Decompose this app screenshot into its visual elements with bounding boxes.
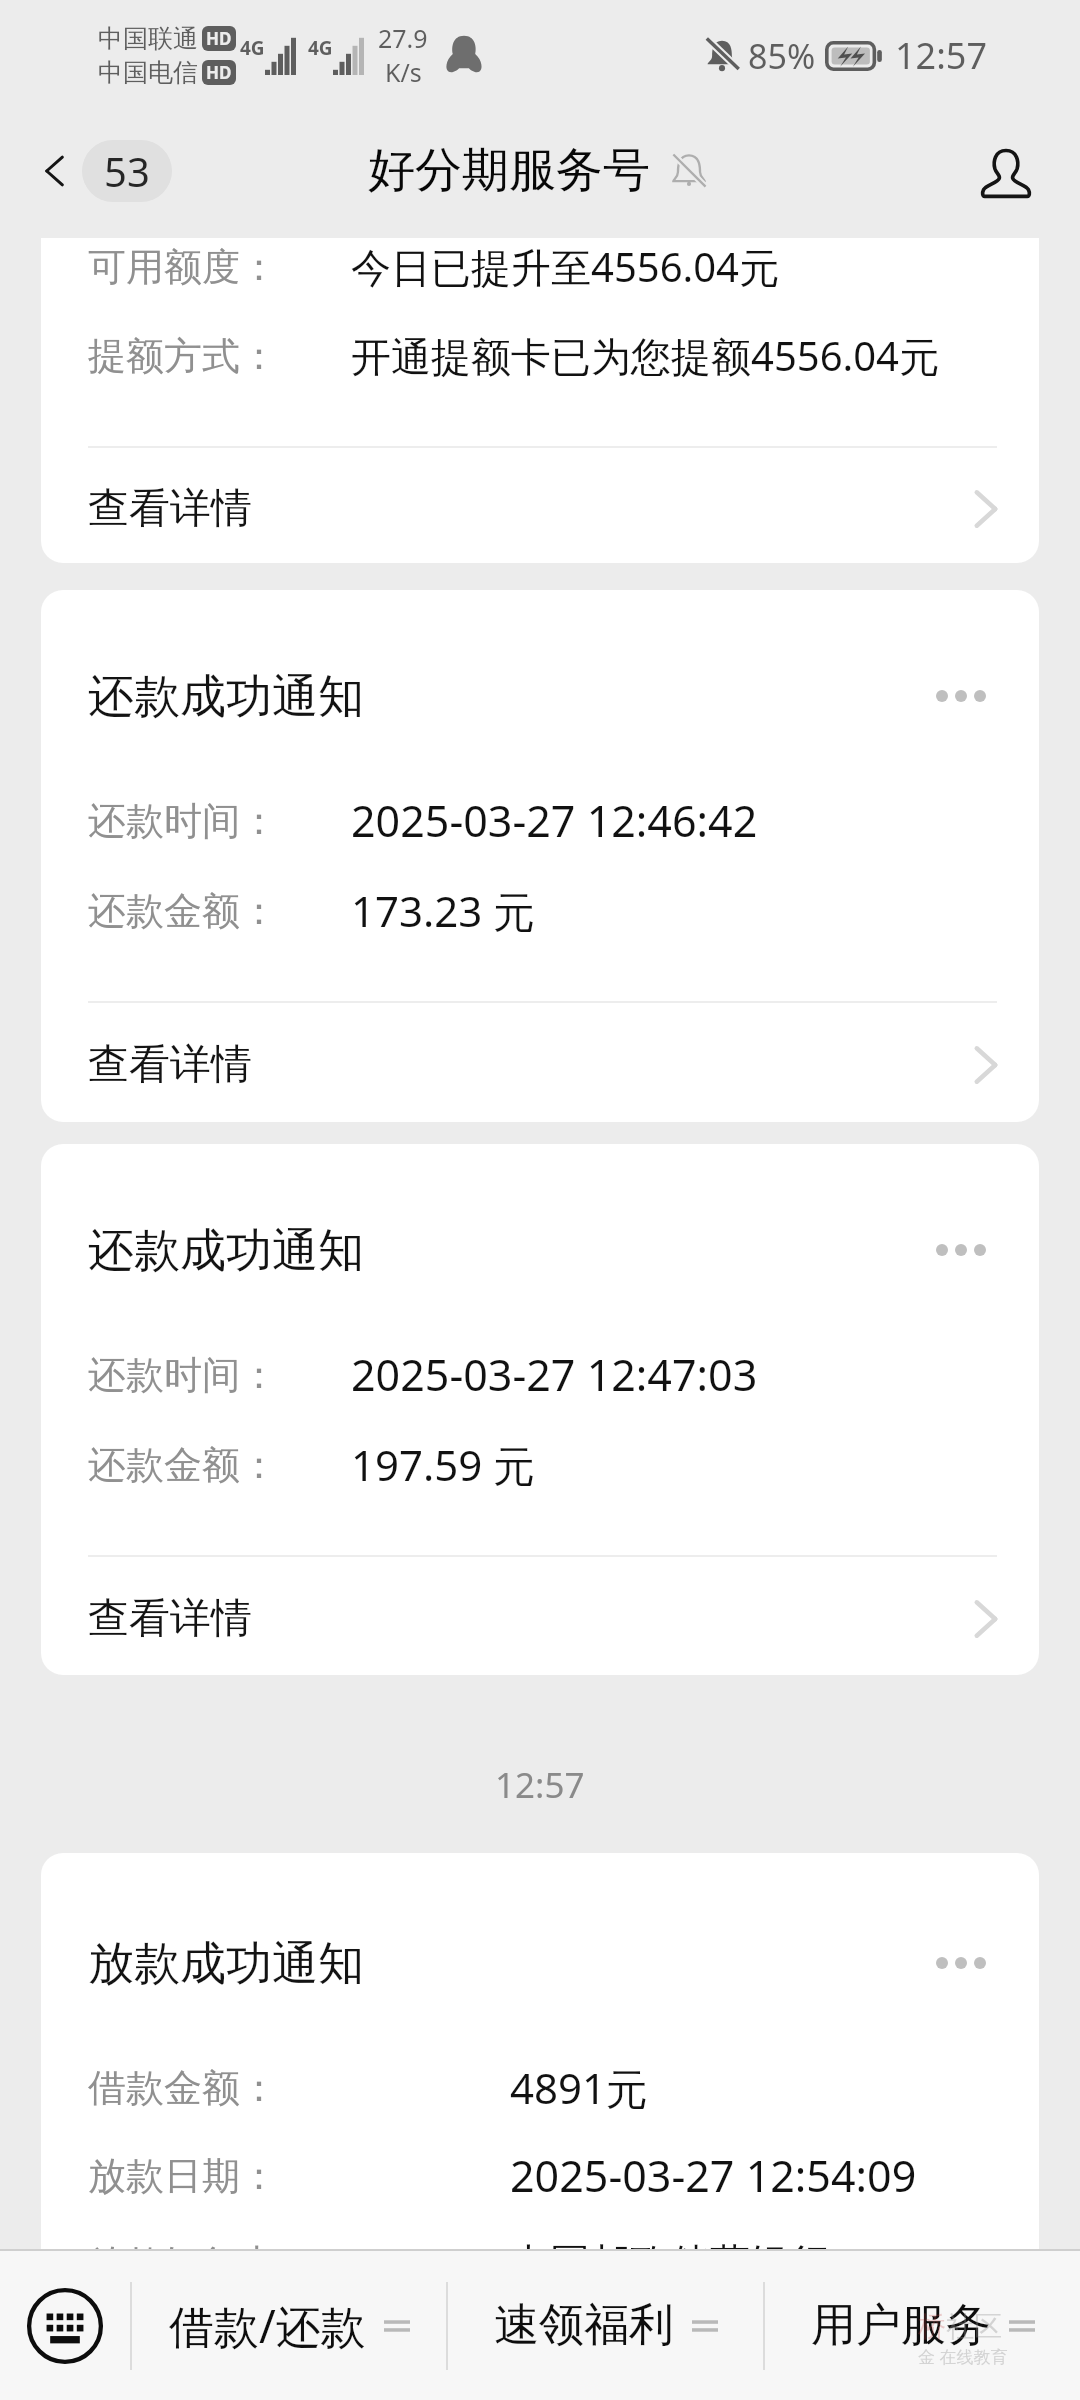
staticText: 查看详情: [88, 483, 252, 535]
staticText: 2025-03-27 12:46:42: [351, 791, 758, 850]
staticText: 中国电信: [98, 57, 198, 88]
staticText: 借款金额：: [88, 2064, 278, 2112]
staticText: 4G: [240, 35, 265, 61]
staticText: 好分期服务号: [368, 141, 650, 200]
staticText: HD: [206, 61, 232, 84]
button[interactable]: 查看详情: [41, 1559, 1039, 1675]
staticText: 12:57: [895, 31, 988, 80]
button[interactable]: More options: [918, 666, 1004, 726]
staticText: 可用额度：: [88, 243, 278, 291]
staticText: 用户服务: [811, 2297, 991, 2354]
staticText: HD: [206, 27, 232, 50]
button[interactable]: 查看详情: [41, 449, 1039, 563]
staticText: 2025-03-27 12:54:09: [510, 2146, 917, 2205]
button[interactable]: 速领福利: [448, 2251, 763, 2400]
staticText: 还款成功通知: [88, 1222, 364, 1280]
staticText: 借款/还款: [169, 2295, 366, 2356]
staticText: K/s: [385, 55, 422, 89]
staticText: 金 在线教育: [918, 2345, 1008, 2368]
button[interactable]: More options: [918, 1220, 1004, 1280]
button[interactable]: 用户服务: [765, 2251, 1080, 2400]
staticText: 12:57: [495, 1761, 585, 1809]
button[interactable]: 查看详情: [41, 1005, 1039, 1122]
staticText: 还款金额：: [88, 1441, 278, 1489]
other: Back: [32, 148, 78, 194]
staticText: 社区: [946, 2309, 1002, 2344]
staticText: 速领福利: [494, 2297, 674, 2354]
staticText: 27.9: [378, 21, 428, 55]
staticText: 2025-03-27 12:47:03: [351, 1345, 758, 1404]
staticText: 查看详情: [88, 1593, 252, 1645]
staticText: 放款日期：: [88, 2152, 278, 2200]
staticText: 4G: [308, 35, 333, 61]
staticText: 开通提额卡已为您提额4556.04元: [351, 328, 939, 383]
staticText: 中国邮政储蓄银行: [510, 2238, 830, 2249]
staticText: 放款银行卡: [88, 2240, 278, 2249]
staticText: 还款金额：: [88, 887, 278, 935]
staticText: 4891元: [510, 2059, 649, 2116]
button[interactable]: Keyboard: [0, 2251, 130, 2400]
staticText: 53: [104, 144, 150, 198]
staticText: 还款成功通知: [88, 668, 364, 726]
staticText: 中国联通: [98, 23, 198, 54]
button[interactable]: More options: [918, 1933, 1004, 1993]
button[interactable]: 借款/还款: [132, 2251, 446, 2400]
button[interactable]: Profile: [966, 134, 1046, 214]
staticText: 查看详情: [88, 1039, 252, 1091]
staticText: 提额方式：: [88, 332, 278, 380]
staticText: 桥: [918, 2309, 946, 2344]
staticText: 还款时间：: [88, 797, 278, 845]
staticText: 还款时间：: [88, 1351, 278, 1399]
staticText: 173.23 元: [351, 882, 536, 939]
staticText: 85%: [748, 33, 816, 79]
staticText: 197.59 元: [351, 1436, 536, 1493]
staticText: 今日已提升至4556.04元: [351, 239, 779, 294]
button[interactable]: Back: [32, 140, 180, 202]
staticText: 放款成功通知: [88, 1935, 364, 1993]
